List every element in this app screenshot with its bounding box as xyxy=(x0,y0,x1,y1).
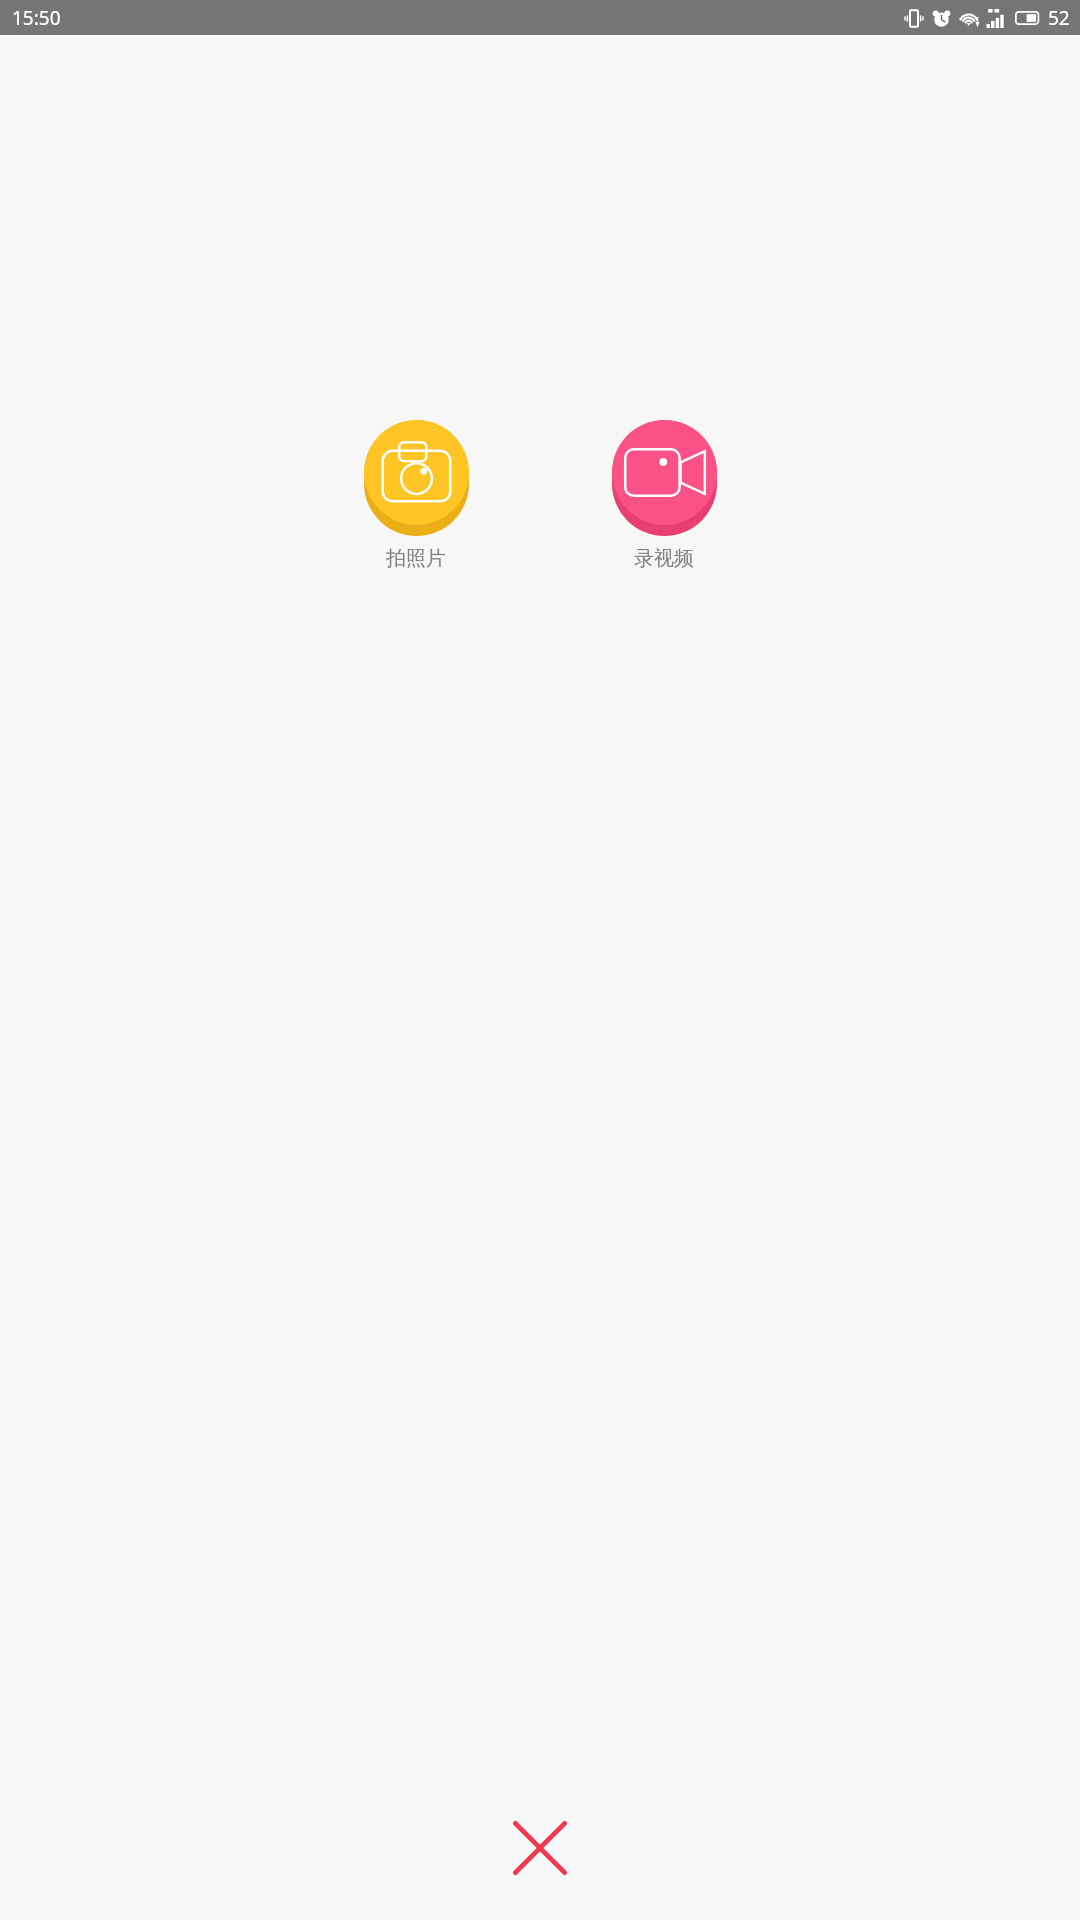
staticText: 拍照片 xyxy=(386,546,446,571)
button[interactable]: Record video xyxy=(559,420,769,571)
staticText: 52 xyxy=(1048,5,1070,31)
button[interactable]: Take photo xyxy=(311,420,521,571)
staticText: 15:50 xyxy=(12,5,61,31)
button[interactable]: Close xyxy=(486,1794,594,1902)
staticText: 录视频 xyxy=(634,546,694,571)
